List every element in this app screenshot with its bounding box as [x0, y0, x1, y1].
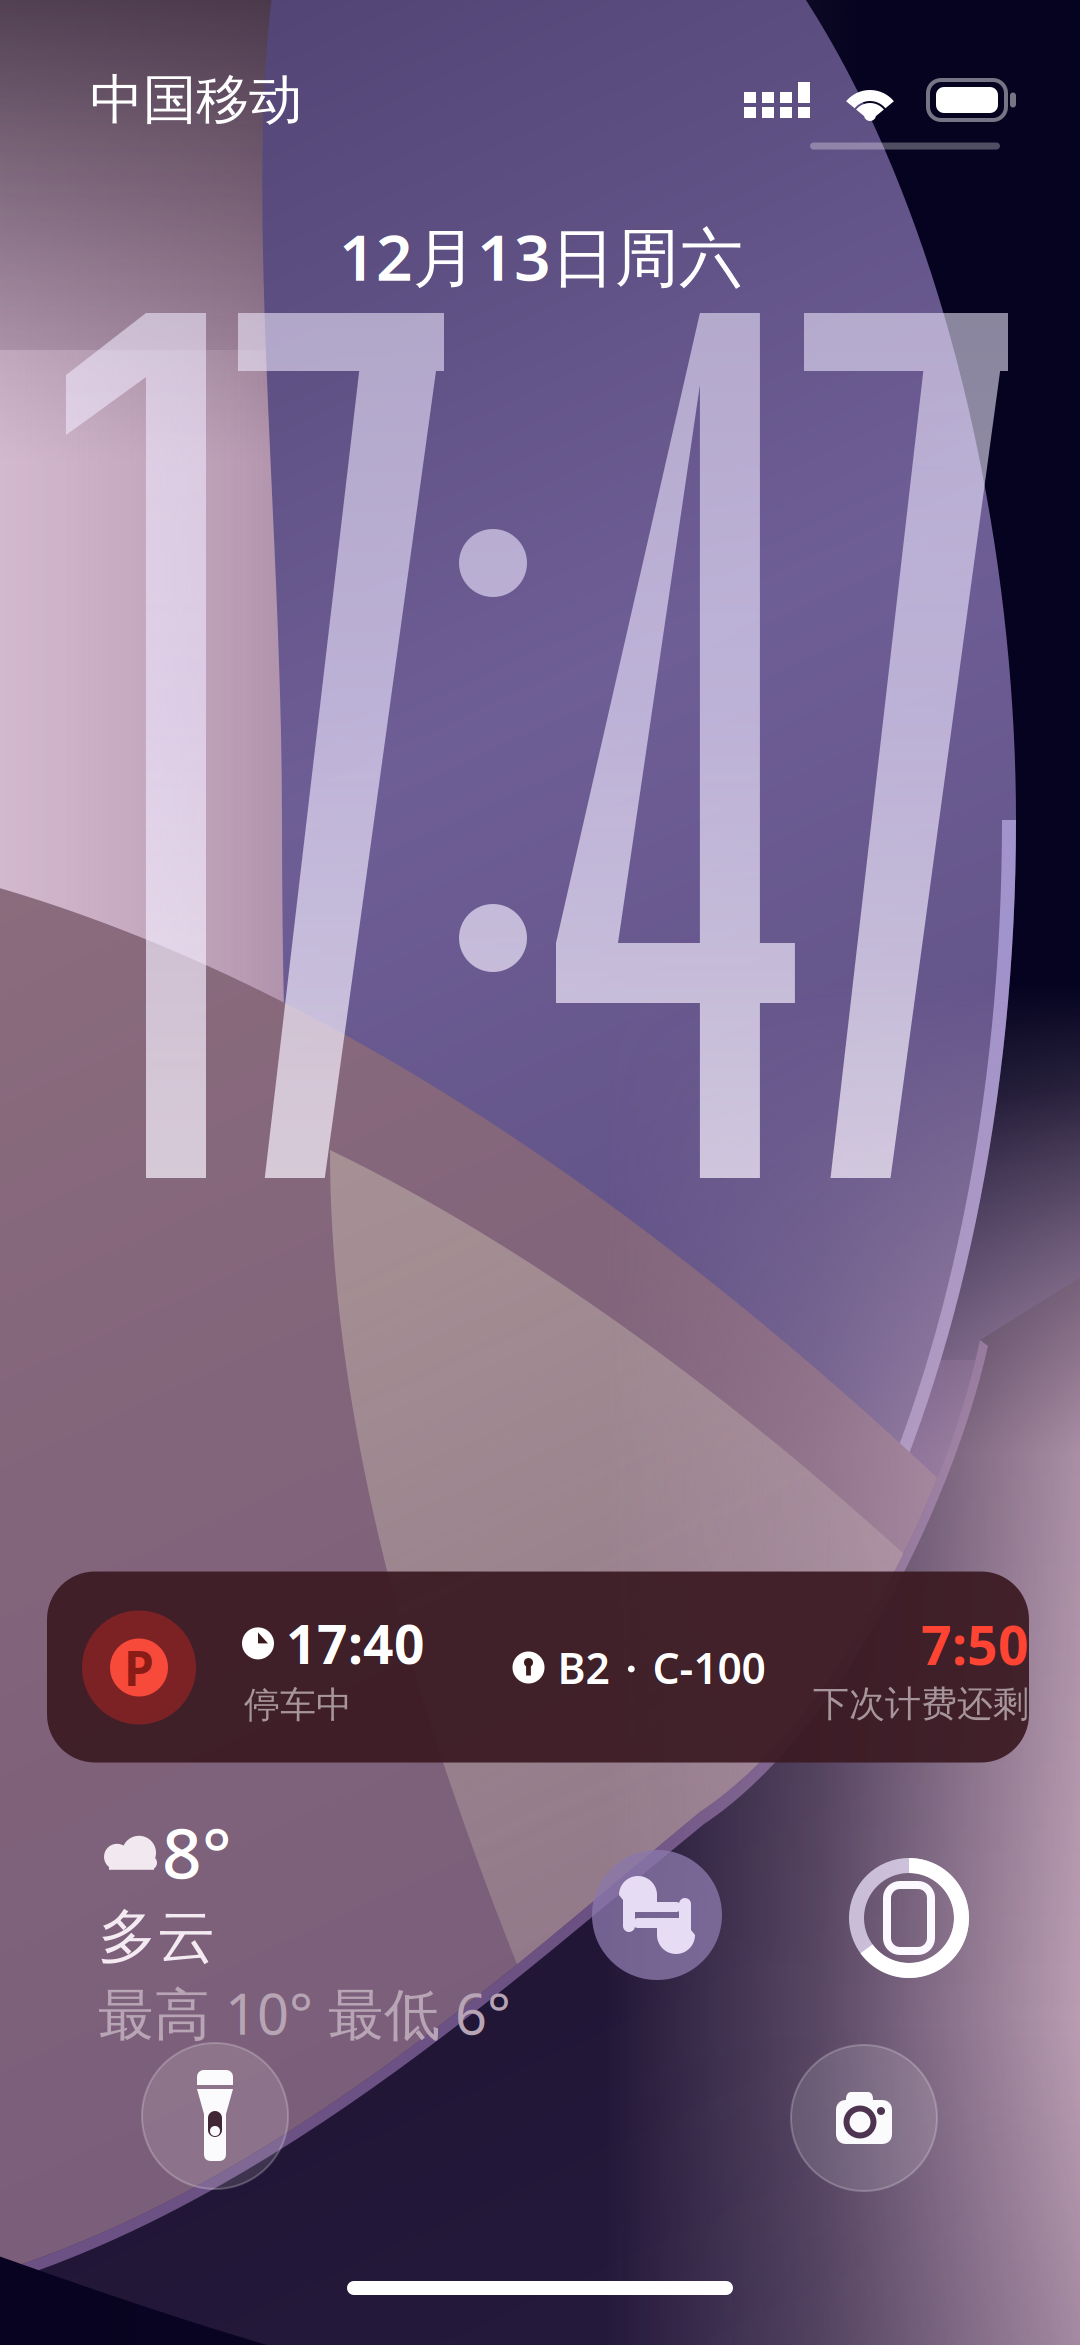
staticText: 最高 10° 最低 6°	[98, 1976, 511, 2050]
staticText: B2・C-100	[557, 1639, 765, 1696]
staticText: 12月13日周六	[339, 213, 743, 298]
staticText: 17:40	[286, 1608, 425, 1679]
staticText: 停车中	[244, 1683, 352, 1727]
staticText: 7:50	[921, 1609, 1029, 1680]
button[interactable]: 8°	[98, 1833, 518, 2023]
button[interactable]: Sleep Focus	[592, 1850, 722, 1980]
button[interactable]: Flashlight	[142, 2043, 288, 2189]
staticText: 8°	[162, 1806, 232, 1898]
button[interactable]: Screen Distance	[836, 1845, 982, 1991]
button[interactable]: P	[47, 1571, 1029, 1762]
staticText: 下次计费还剩	[813, 1682, 1029, 1726]
button[interactable]: Camera	[791, 2045, 937, 2191]
staticText: P	[124, 1636, 154, 1699]
staticText: 中国移动	[90, 67, 302, 133]
staticText: 多云	[98, 1901, 216, 1973]
